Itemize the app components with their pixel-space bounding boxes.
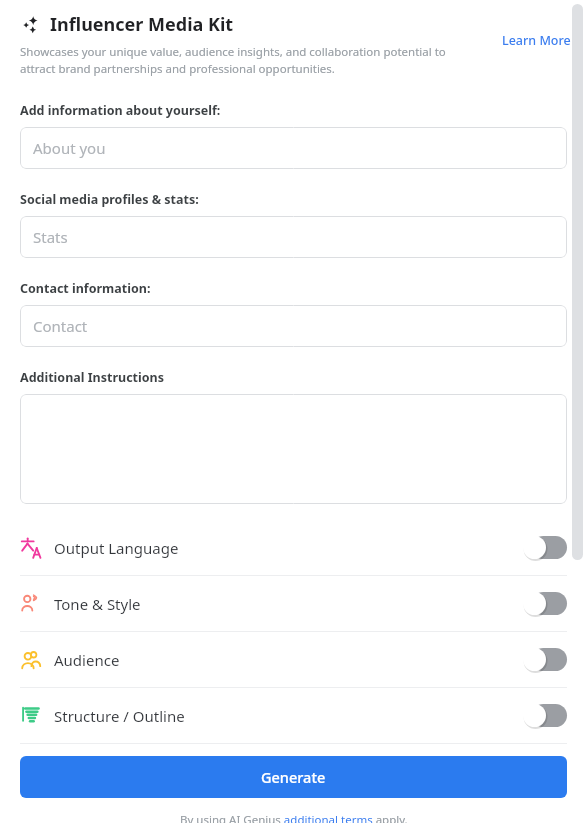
staticText: About you xyxy=(33,138,106,158)
other: Toggle Audience xyxy=(523,648,567,671)
staticText: By using AI Genius additional terms appl… xyxy=(180,812,408,823)
staticText: Output Language xyxy=(54,538,523,558)
button[interactable] xyxy=(20,394,567,504)
button[interactable]: Audience xyxy=(0,632,587,687)
staticText: Influencer Media Kit xyxy=(50,12,234,37)
button[interactable]: Output Language xyxy=(0,520,587,575)
staticText: Learn More xyxy=(502,32,571,49)
button[interactable]: Learn More xyxy=(502,32,571,49)
staticText: Contact information: xyxy=(20,280,151,297)
staticText: Generate xyxy=(261,767,326,787)
staticText: Stats xyxy=(33,227,68,247)
other: Toggle Tone & Style xyxy=(523,592,567,615)
staticText: Audience xyxy=(54,650,523,670)
button[interactable]: Tone & Style xyxy=(0,576,587,631)
button[interactable]: Stats xyxy=(20,216,567,258)
staticText: Add information about yourself: xyxy=(20,102,221,119)
button[interactable]: Contact xyxy=(20,305,567,347)
other: Toggle Structure / Outline xyxy=(523,704,567,727)
staticText: Additional Instructions xyxy=(20,369,164,386)
staticText: Showcases your unique value, audience in… xyxy=(20,44,473,76)
button[interactable]: Structure / Outline xyxy=(0,688,587,743)
staticText: Structure / Outline xyxy=(54,706,523,726)
staticText: Tone & Style xyxy=(54,594,523,614)
button[interactable]: About you xyxy=(20,127,567,169)
other: Toggle Output Language xyxy=(523,536,567,559)
button[interactable]: Generate xyxy=(20,756,567,798)
staticText: Contact xyxy=(33,316,88,336)
staticText: Social media profiles & stats: xyxy=(20,191,199,208)
